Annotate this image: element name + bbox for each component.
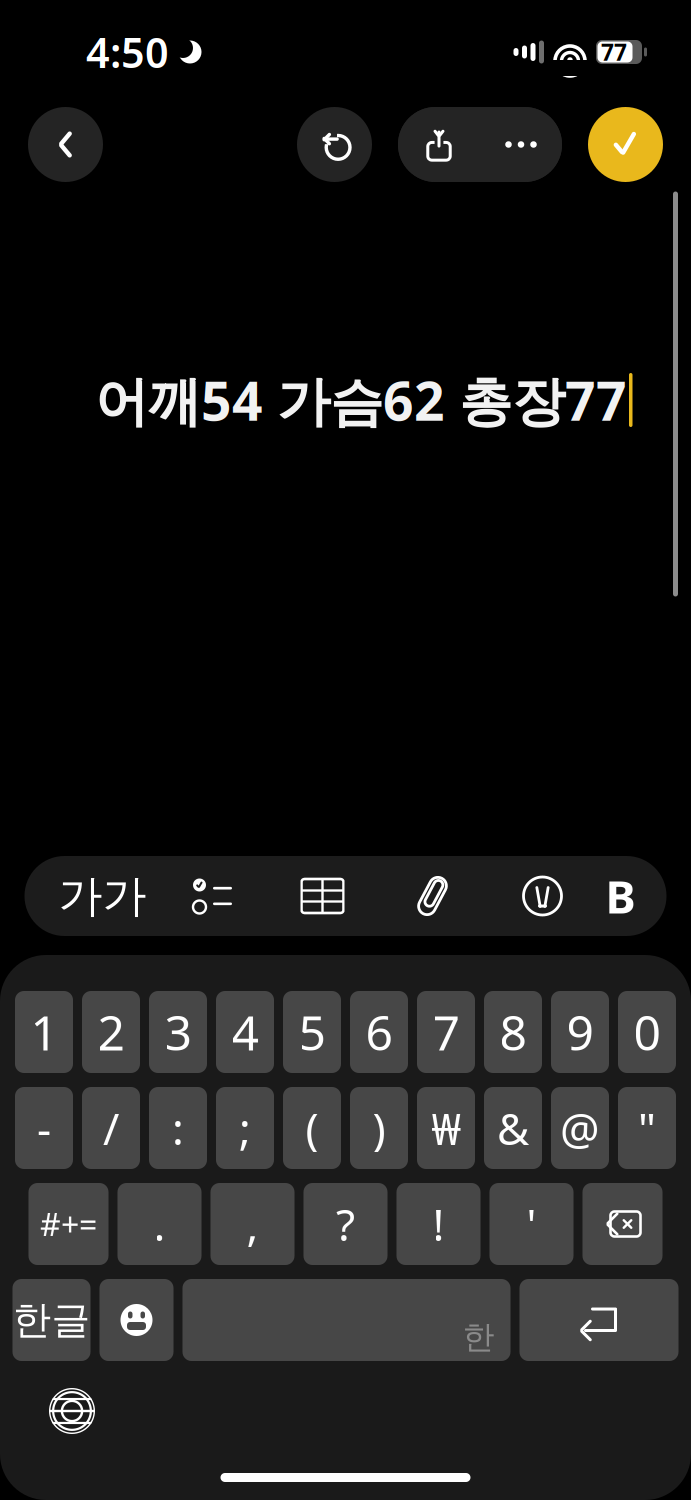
staticText: ; [239, 1099, 251, 1157]
staticText: 어깨54 가슴62 총장77 [95, 365, 627, 435]
button[interactable]: @ [551, 1087, 609, 1169]
button[interactable]: Attach file [377, 856, 487, 936]
button[interactable]: Markup [487, 856, 597, 936]
staticText: 0 [633, 1000, 660, 1064]
button[interactable]: Done [588, 107, 663, 182]
button[interactable]: 9 [551, 991, 609, 1073]
staticText: 4 [231, 1000, 258, 1064]
button[interactable]: 한글 [12, 1279, 90, 1361]
button[interactable]: 2 [82, 991, 140, 1073]
staticText: 2 [97, 1000, 124, 1064]
button[interactable]: Share [398, 107, 480, 182]
staticText: ' [526, 1195, 536, 1253]
button[interactable]: / [82, 1087, 140, 1169]
button[interactable]: ! [396, 1183, 480, 1265]
staticText: ( [305, 1099, 318, 1157]
button[interactable]: - [15, 1087, 73, 1169]
button[interactable]: Delete [582, 1183, 662, 1265]
button[interactable]: 4 [216, 991, 274, 1073]
button[interactable]: Undo [297, 107, 372, 182]
button[interactable]: Checklist [157, 856, 267, 936]
staticText: #+= [40, 1203, 97, 1245]
staticText: 한글 [12, 1296, 90, 1344]
staticText: 3 [164, 1000, 191, 1064]
button[interactable]: More [480, 107, 562, 182]
staticText: , [246, 1195, 258, 1253]
staticText: 77 [601, 37, 627, 67]
button[interactable]: : [149, 1087, 207, 1169]
button[interactable]: Back [28, 107, 103, 182]
staticText: - [37, 1099, 51, 1157]
button[interactable]: Space [182, 1279, 510, 1361]
button[interactable]: Return [519, 1279, 678, 1361]
staticText: 6 [365, 1000, 392, 1064]
staticText: / [103, 1099, 119, 1157]
button[interactable]: . [117, 1183, 201, 1265]
button[interactable]: ( [283, 1087, 341, 1169]
button[interactable]: 1 [15, 991, 73, 1073]
button[interactable]: 7 [417, 991, 475, 1073]
button[interactable]: More formatting [597, 856, 643, 936]
button[interactable]: " [618, 1087, 676, 1169]
staticText: ! [432, 1195, 444, 1253]
staticText: ) [372, 1099, 385, 1157]
staticText: 4:50 [86, 25, 169, 79]
staticText: B [605, 866, 635, 926]
staticText: 7 [432, 1000, 459, 1064]
staticText: : [172, 1099, 184, 1157]
staticText: & [497, 1099, 529, 1157]
button[interactable]: 가가 [47, 856, 157, 936]
button[interactable]: ' [489, 1183, 573, 1265]
button[interactable]: 6 [350, 991, 408, 1073]
staticText: " [638, 1099, 656, 1157]
staticText: 8 [499, 1000, 526, 1064]
button[interactable]: ; [216, 1087, 274, 1169]
button[interactable]: , [210, 1183, 294, 1265]
button[interactable]: Table [267, 856, 377, 936]
button[interactable]: 8 [484, 991, 542, 1073]
staticText: 9 [566, 1000, 593, 1064]
button[interactable]: ? [303, 1183, 387, 1265]
button[interactable]: 5 [283, 991, 341, 1073]
staticText: ₩ [431, 1099, 460, 1157]
staticText: 가가 [58, 869, 146, 923]
button[interactable]: #+= [28, 1183, 108, 1265]
staticText: 5 [298, 1000, 325, 1064]
staticText: . [153, 1195, 165, 1253]
button[interactable]: 3 [149, 991, 207, 1073]
button[interactable]: Next keyboard [32, 1375, 112, 1447]
button[interactable]: ₩ [417, 1087, 475, 1169]
staticText: 한 [462, 1317, 494, 1357]
button[interactable]: 0 [618, 991, 676, 1073]
button[interactable]: & [484, 1087, 542, 1169]
staticText: 1 [30, 1000, 57, 1064]
button[interactable]: Emoji [99, 1279, 173, 1361]
staticText: @ [560, 1099, 600, 1157]
button[interactable]: ) [350, 1087, 408, 1169]
staticText: ? [336, 1195, 355, 1253]
